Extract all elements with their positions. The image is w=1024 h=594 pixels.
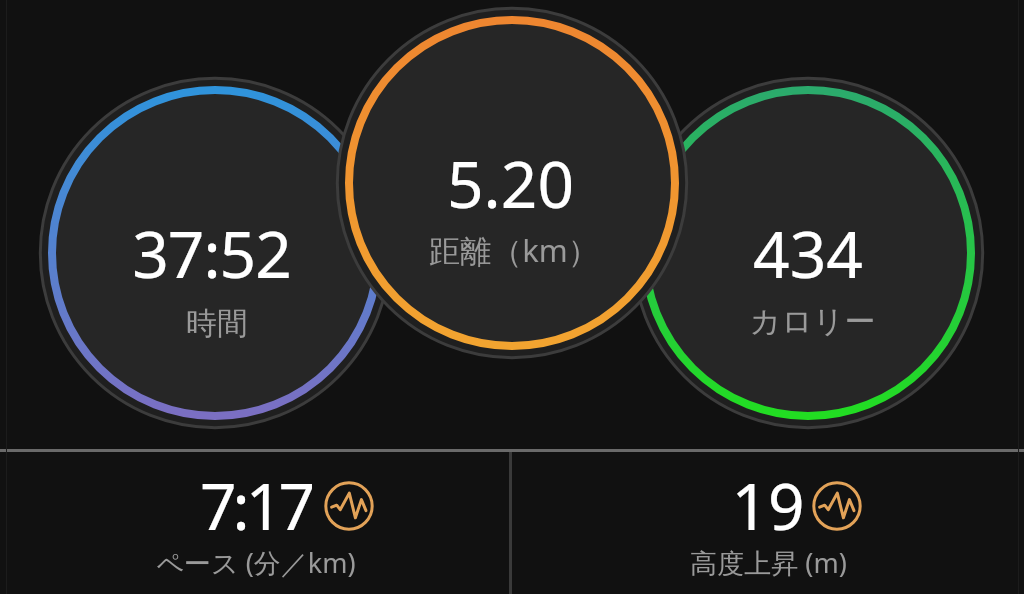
staticText: 5.20 <box>447 140 574 227</box>
staticText: 7:17 <box>200 462 311 549</box>
button[interactable]: 7:17 <box>0 452 511 594</box>
staticText: 距離（km） <box>429 229 599 271</box>
button[interactable] <box>349 20 675 346</box>
staticText: カロリー <box>749 302 876 341</box>
staticText: 時間 <box>186 304 248 343</box>
staticText: ペース (分／km) <box>156 544 356 581</box>
button[interactable]: Activity graph details <box>807 476 867 536</box>
button[interactable] <box>52 90 378 416</box>
staticText: 19 <box>731 462 805 549</box>
button[interactable]: 19 <box>512 452 1024 594</box>
button[interactable]: Activity graph details <box>319 476 379 536</box>
button[interactable] <box>645 90 971 416</box>
staticText: 高度上昇 (m) <box>690 544 847 581</box>
staticText: 434 <box>753 210 863 297</box>
staticText: 37:52 <box>132 210 291 297</box>
